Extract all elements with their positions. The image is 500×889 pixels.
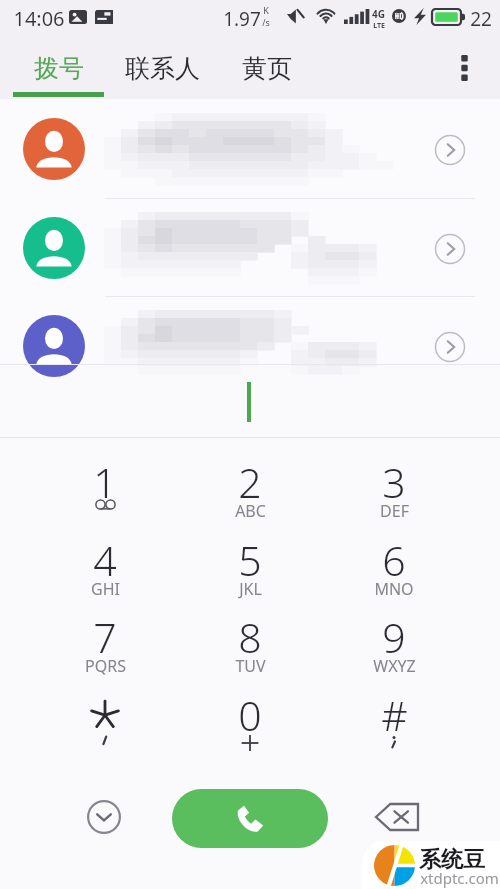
staticText: 3 [382, 454, 406, 504]
button[interactable]: Open contact details [0, 198, 500, 296]
button[interactable]: 黄页 [222, 39, 312, 97]
staticText: 22 [470, 6, 492, 32]
staticText: 7 [93, 609, 117, 659]
staticText: LTE [373, 21, 385, 31]
staticText: xtdptc.com [420, 868, 499, 888]
button[interactable]: Open contact details [0, 99, 500, 197]
button[interactable]: 6 [322, 532, 466, 610]
staticText: 14:06 [13, 5, 65, 32]
button[interactable]: Call [172, 789, 328, 848]
button[interactable]: 5 [178, 532, 322, 610]
button[interactable]: 4 [33, 532, 177, 610]
button[interactable]: Backspace [372, 793, 422, 841]
button[interactable]: # [322, 687, 466, 765]
button[interactable]: Hide keypad [80, 793, 128, 841]
button[interactable]: 0 [178, 687, 322, 765]
button[interactable]: 1 [33, 454, 177, 532]
staticText: 系统豆 [419, 846, 485, 874]
button[interactable]: Open contact details [430, 229, 470, 269]
button[interactable]: 3 [322, 454, 466, 532]
staticText: 6 [382, 532, 406, 582]
staticText: ABC [235, 500, 266, 522]
staticText: 2 [238, 454, 262, 504]
staticText: 9 [382, 609, 406, 659]
staticText: 4G [372, 7, 385, 21]
button[interactable]: 9 [322, 609, 466, 687]
button[interactable] [33, 687, 177, 765]
staticText: 黄页 [242, 53, 292, 84]
button[interactable]: 8 [178, 609, 322, 687]
button[interactable]: Open contact details [430, 130, 470, 170]
button[interactable]: Open contact details [0, 296, 500, 394]
staticText: 5 [238, 532, 262, 582]
button[interactable]: 拨号 [13, 39, 105, 97]
staticText: DEF [380, 500, 409, 522]
staticText: 8 [238, 609, 262, 659]
staticText: # [381, 687, 408, 737]
staticText: WXYZ [373, 655, 416, 677]
staticText: GHI [91, 578, 120, 600]
staticText: 1 [93, 454, 117, 504]
staticText: JKL [239, 578, 262, 600]
button[interactable]: 2 [178, 454, 322, 532]
staticText: 0 [238, 687, 262, 737]
staticText: 拨号 [34, 53, 84, 84]
button[interactable]: 联系人 [117, 39, 207, 97]
staticText: 1.97 [223, 6, 261, 32]
button[interactable]: Open contact details [430, 327, 470, 367]
staticText: 4 [93, 532, 117, 582]
staticText: /s [262, 16, 270, 28]
button[interactable]: 7 [33, 609, 177, 687]
staticText: K [263, 4, 269, 16]
staticText: 联系人 [125, 53, 200, 84]
staticText: TUV [235, 655, 266, 677]
staticText: PQRS [85, 655, 126, 677]
staticText: MNO [374, 578, 414, 600]
button[interactable]: More options [440, 39, 488, 97]
